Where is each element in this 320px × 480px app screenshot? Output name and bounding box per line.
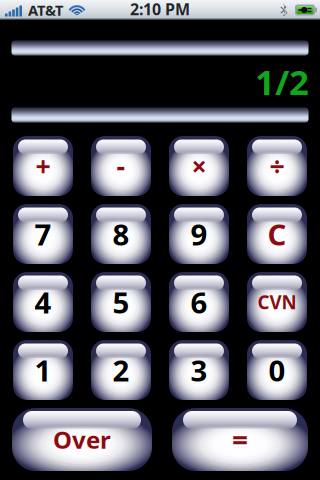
staticText: CVN [257, 290, 296, 314]
staticText: 3 [190, 350, 207, 389]
button[interactable]: × [169, 136, 229, 196]
button[interactable]: C [247, 204, 307, 264]
button[interactable]: 9 [169, 204, 229, 264]
staticText: 8 [112, 214, 129, 253]
staticText: 6 [190, 282, 207, 321]
staticText: Over [53, 424, 111, 455]
staticText: C [267, 214, 286, 253]
staticText: ÷ [269, 148, 284, 184]
staticText: 1/2 [255, 58, 309, 104]
button[interactable]: Over [12, 408, 152, 471]
staticText: 7 [34, 214, 51, 253]
button[interactable]: 8 [91, 204, 151, 264]
button[interactable]: 1 [13, 340, 73, 400]
button[interactable]: 4 [13, 272, 73, 332]
staticText: 5 [112, 282, 129, 321]
staticText: 9 [190, 214, 207, 253]
button[interactable]: - [91, 136, 151, 196]
button[interactable]: 6 [169, 272, 229, 332]
staticText: + [35, 148, 50, 184]
button[interactable]: 2 [91, 340, 151, 400]
staticText: × [191, 148, 206, 184]
button[interactable]: ÷ [247, 136, 307, 196]
staticText: 2 [112, 350, 129, 389]
button[interactable]: 0 [247, 340, 307, 400]
staticText: 0 [268, 350, 285, 389]
button[interactable]: 5 [91, 272, 151, 332]
staticText: 4 [34, 282, 51, 321]
staticText: = [232, 421, 248, 458]
button[interactable]: 3 [169, 340, 229, 400]
staticText: AT&T [28, 0, 63, 20]
button[interactable]: 7 [13, 204, 73, 264]
button[interactable]: + [13, 136, 73, 196]
button[interactable]: = [172, 408, 308, 471]
staticText: - [116, 148, 125, 184]
button[interactable]: CVN [247, 272, 307, 332]
staticText: 1 [34, 350, 51, 389]
staticText: 2:10 PM [130, 0, 190, 20]
